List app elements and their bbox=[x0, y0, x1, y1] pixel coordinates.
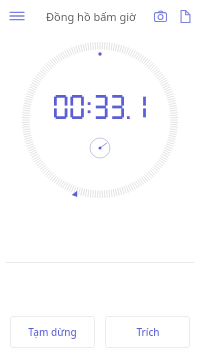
button[interactable]: Trích bbox=[105, 316, 190, 348]
staticText: Trích bbox=[136, 325, 160, 339]
button[interactable]: Tạm dừng bbox=[10, 316, 95, 348]
button[interactable]: New document bbox=[174, 5, 196, 27]
button[interactable]: Camera bbox=[149, 5, 171, 27]
button[interactable]: Menu bbox=[5, 4, 29, 28]
staticText: Tạm dừng bbox=[28, 325, 77, 339]
staticText: Đồng hồ bấm giờ bbox=[46, 9, 136, 24]
